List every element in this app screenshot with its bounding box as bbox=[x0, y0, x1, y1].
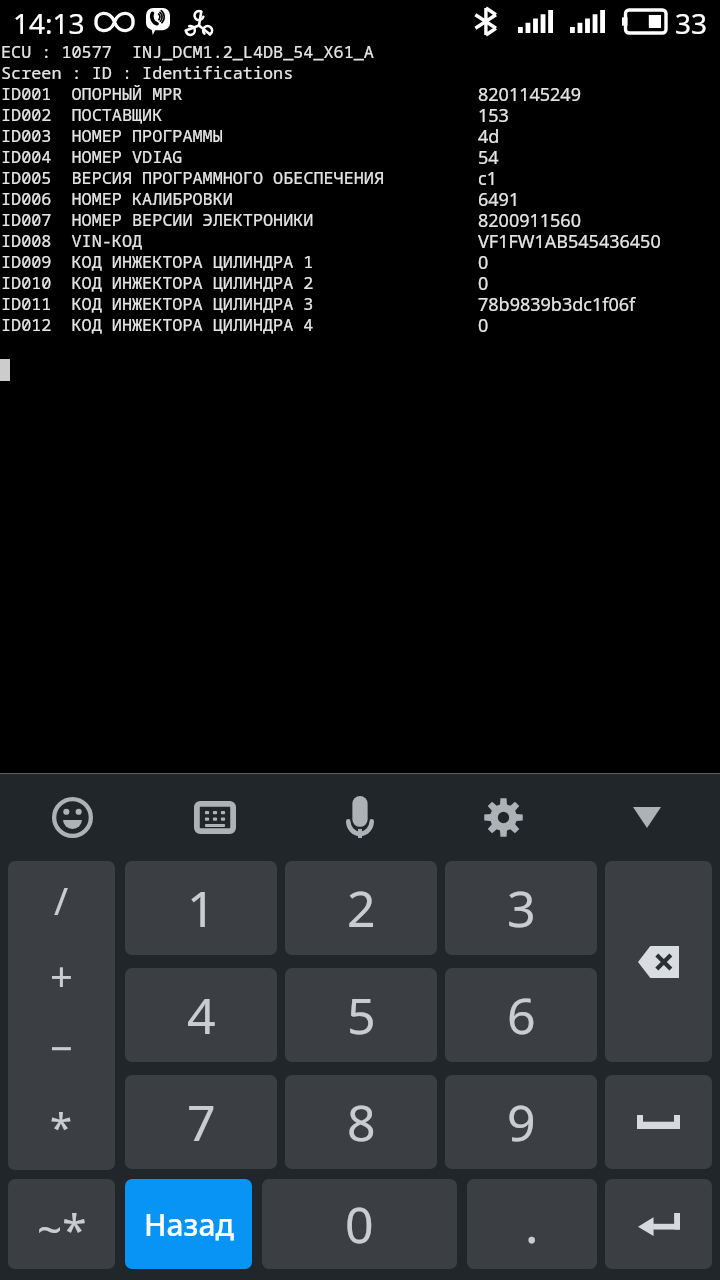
staticText: ECU : 10577 INJ_DCM1.2_L4DB_54_X61_A bbox=[1, 40, 374, 63]
button[interactable]: 0 bbox=[262, 1179, 457, 1269]
staticText: 0 bbox=[345, 1190, 374, 1258]
button[interactable]: Backspace bbox=[605, 861, 712, 1062]
staticText: 0 bbox=[478, 271, 489, 296]
staticText: 54 bbox=[478, 145, 499, 170]
staticText: 6 bbox=[507, 981, 536, 1049]
staticText: + bbox=[50, 948, 73, 1002]
staticText: VF1FW1AB545436450 bbox=[478, 229, 661, 254]
button[interactable]: Emoji bbox=[43, 788, 101, 846]
staticText: Назад bbox=[144, 1204, 234, 1245]
button[interactable]: 1 bbox=[125, 861, 277, 955]
button[interactable]: 3 bbox=[445, 861, 597, 955]
button[interactable]: 4 bbox=[125, 968, 277, 1062]
staticText: ID008 VIN-КОД bbox=[1, 229, 143, 252]
staticText: − bbox=[50, 1020, 73, 1074]
staticText: 4d bbox=[478, 124, 500, 149]
button[interactable]: 9 bbox=[445, 1075, 597, 1169]
staticText: 5 bbox=[347, 981, 376, 1049]
staticText: ID005 ВЕРСИЯ ПРОГРАММНОГО ОБЕСПЕЧЕНИЯ bbox=[1, 166, 384, 189]
staticText: 8201145249 bbox=[478, 82, 581, 107]
staticText: ~* bbox=[37, 1199, 87, 1259]
staticText: 0 bbox=[478, 250, 489, 275]
button[interactable]: Назад bbox=[125, 1179, 252, 1269]
staticText: 0 bbox=[478, 313, 489, 338]
staticText: ID011 КОД ИНЖЕКТОРА ЦИЛИНДРА 3 bbox=[1, 292, 314, 315]
button[interactable]: ~* bbox=[8, 1179, 115, 1269]
staticText: ID002 ПОСТАВЩИК bbox=[1, 103, 163, 126]
staticText: ID009 КОД ИНЖЕКТОРА ЦИЛИНДРА 1 bbox=[1, 250, 314, 273]
button[interactable]: Enter bbox=[605, 1179, 712, 1269]
staticText: 4 bbox=[187, 981, 216, 1049]
staticText: ID006 НОМЕР КАЛИБРОВКИ bbox=[1, 187, 233, 210]
button[interactable]: Symbols bbox=[8, 861, 115, 1170]
button[interactable]: 7 bbox=[125, 1075, 277, 1169]
staticText: 6491 bbox=[478, 187, 520, 212]
staticText: 33 bbox=[675, 4, 708, 42]
staticText: 8 bbox=[347, 1088, 376, 1156]
button[interactable]: 2 bbox=[285, 861, 437, 955]
staticText: . bbox=[525, 1190, 539, 1258]
button[interactable]: Switch keyboard bbox=[186, 788, 244, 846]
staticText: / bbox=[54, 874, 69, 926]
staticText: ID001 ОПОРНЫЙ MPR bbox=[1, 82, 183, 105]
staticText: 9 bbox=[507, 1088, 536, 1156]
staticText: Screen : ID : Identifications bbox=[1, 61, 294, 84]
staticText: 78b9839b3dc1f06f bbox=[478, 292, 636, 317]
button[interactable]: 8 bbox=[285, 1075, 437, 1169]
staticText: 2 bbox=[347, 874, 376, 942]
staticText: 14:13 bbox=[13, 4, 85, 42]
staticText: c1 bbox=[478, 166, 497, 191]
staticText: ID004 НОМЕР VDIAG bbox=[1, 145, 183, 168]
staticText: ID012 КОД ИНЖЕКТОРА ЦИЛИНДРА 4 bbox=[1, 313, 314, 336]
staticText: 1 bbox=[187, 874, 216, 942]
button[interactable]: 6 bbox=[445, 968, 597, 1062]
button[interactable]: Settings bbox=[474, 788, 532, 846]
staticText: ID003 НОМЕР ПРОГРАММЫ bbox=[1, 124, 223, 147]
staticText: 153 bbox=[478, 103, 509, 128]
staticText: ID007 НОМЕР ВЕРСИИ ЭЛЕКТРОНИКИ bbox=[1, 208, 314, 231]
staticText: 8200911560 bbox=[478, 208, 581, 233]
button[interactable]: Voice input bbox=[331, 788, 389, 846]
staticText: 3 bbox=[507, 874, 536, 942]
button[interactable]: 5 bbox=[285, 968, 437, 1062]
staticText: ID010 КОД ИНЖЕКТОРА ЦИЛИНДРА 2 bbox=[1, 271, 314, 294]
button[interactable]: . bbox=[467, 1179, 597, 1269]
staticText: * bbox=[50, 1099, 73, 1153]
button[interactable]: Space bbox=[605, 1075, 712, 1169]
staticText: 7 bbox=[187, 1088, 216, 1156]
button[interactable]: Hide keyboard bbox=[618, 788, 676, 846]
